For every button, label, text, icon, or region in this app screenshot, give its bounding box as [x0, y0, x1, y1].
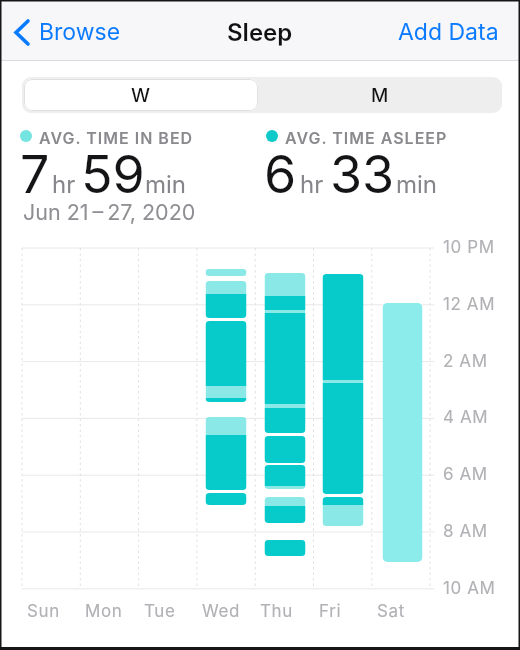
staticText: Browse [39, 18, 121, 46]
staticText: 6 [264, 143, 297, 206]
staticText: M [371, 84, 389, 107]
staticText: Add Data [398, 18, 499, 46]
staticText: 10 PM [443, 237, 495, 258]
staticText: hr [300, 170, 324, 199]
staticText: Thu [260, 601, 293, 622]
staticText: 12 AM [443, 294, 496, 315]
staticText: 2 AM [443, 351, 488, 372]
staticText: Tue [144, 601, 176, 622]
staticText: Sleep [227, 18, 293, 47]
staticText: 8 AM [443, 521, 488, 542]
staticText: min [396, 170, 438, 199]
staticText: hr [52, 170, 76, 199]
staticText: Mon [85, 601, 123, 622]
button[interactable]: M [258, 77, 502, 113]
staticText: 33 [330, 143, 395, 206]
staticText: Wed [202, 601, 241, 622]
staticText: AVG. TIME ASLEEP [285, 128, 448, 144]
button[interactable]: W [24, 79, 258, 111]
staticText: Sun [27, 601, 60, 622]
button[interactable]: Browse [8, 13, 121, 51]
button[interactable]: Add Data [398, 18, 499, 46]
staticText: AVG. TIME IN BED [39, 128, 194, 144]
staticText: Fri [319, 601, 342, 622]
staticText: Sat [377, 601, 405, 622]
staticText: 7 [20, 143, 50, 206]
staticText: Jun 21 – 27, 2020 [23, 199, 196, 225]
staticText: 4 AM [443, 407, 489, 428]
staticText: 6 AM [443, 464, 488, 485]
staticText: 59 [81, 143, 145, 206]
staticText: W [131, 84, 151, 107]
staticText: min [145, 170, 187, 199]
staticText: 10 AM [443, 578, 496, 599]
